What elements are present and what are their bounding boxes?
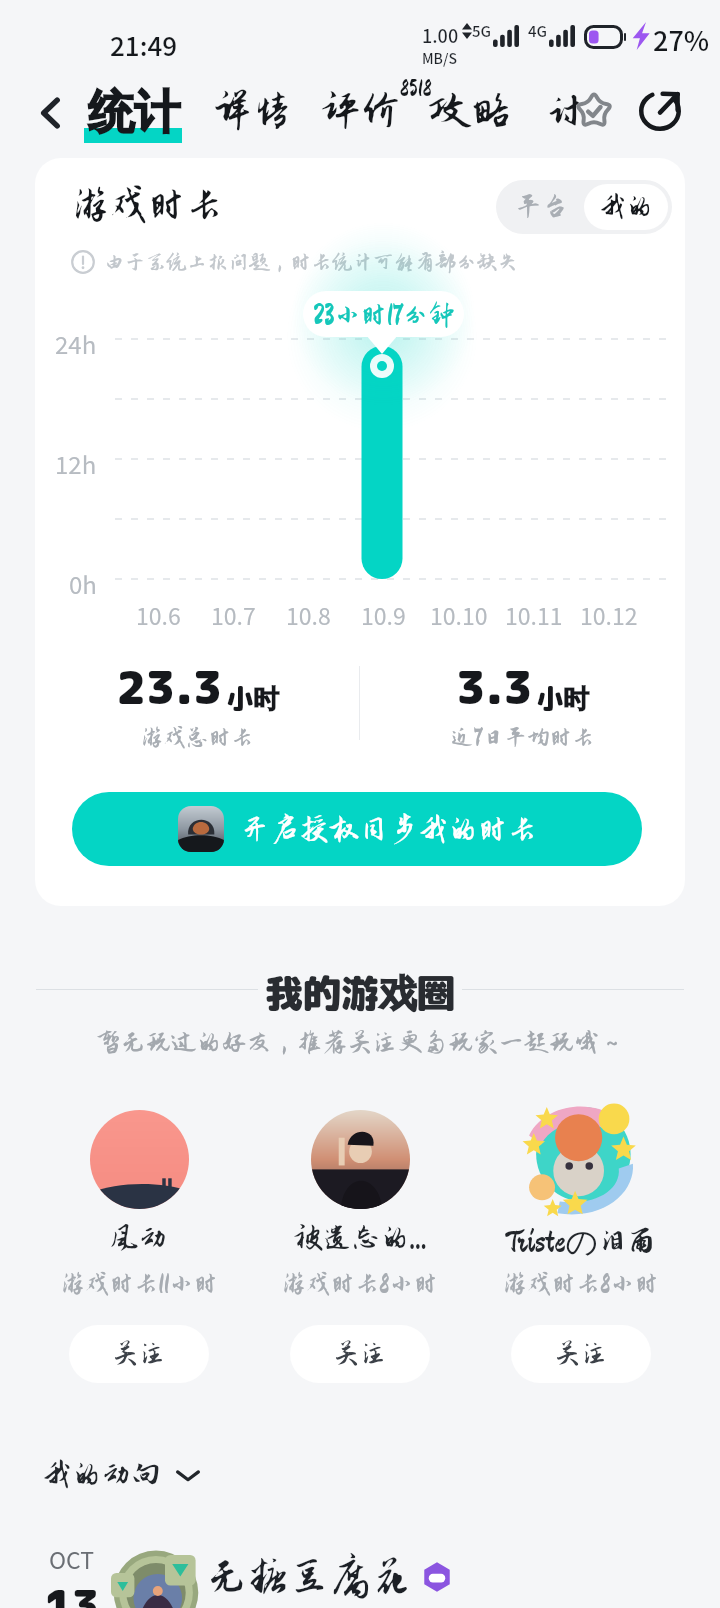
staticText: 暂无玩过的好友，推荐关注更多玩家一起玩哦～ <box>0 1028 720 1056</box>
button[interactable] <box>522 1100 640 1218</box>
staticText: 关注 <box>333 1339 387 1369</box>
staticText: 21:49 <box>110 26 178 64</box>
button[interactable]: 评价 <box>320 88 402 133</box>
button[interactable]: 我的动向 <box>42 1458 201 1491</box>
button[interactable]: 关注 <box>511 1325 651 1383</box>
staticText: 5G <box>472 20 492 42</box>
staticText: 关注 <box>112 1339 166 1369</box>
button[interactable]: Share <box>637 87 683 133</box>
staticText: 开启授权同步我的时长 <box>240 813 537 846</box>
button[interactable]: Favorite <box>570 87 618 135</box>
button[interactable]: 攻略 <box>430 88 512 133</box>
staticText: 游戏总时长 <box>141 725 254 750</box>
staticText: 游戏时长8小时 <box>503 1270 659 1297</box>
button[interactable]: 关注 <box>290 1325 430 1383</box>
button[interactable] <box>311 1110 410 1209</box>
staticText: 23.3 <box>116 656 223 719</box>
staticText: 10.8 <box>286 598 331 631</box>
button[interactable]: 详情 <box>212 88 294 133</box>
staticText: 我的游戏圈 <box>265 966 456 1019</box>
staticText: 小时 <box>227 680 280 716</box>
staticText: 游戏时长 <box>72 184 224 226</box>
button[interactable]: 我的 <box>584 184 668 230</box>
staticText: 关注 <box>554 1339 608 1369</box>
staticText: 统计 <box>88 84 180 142</box>
staticText: 10.10 <box>430 598 488 631</box>
button[interactable]: 关注 <box>69 1325 209 1383</box>
staticText: 10.11 <box>505 598 563 631</box>
button[interactable]: Back <box>28 90 74 136</box>
staticText: 10.9 <box>361 598 406 631</box>
staticText: 评价 <box>320 88 402 133</box>
staticText: 4G <box>528 20 548 42</box>
staticText: 27% <box>653 20 710 59</box>
staticText: 我的动向 <box>42 1458 161 1491</box>
staticText: 12h <box>55 446 97 481</box>
staticText: 10.12 <box>580 598 638 631</box>
button[interactable]: 开启授权同步我的时长 <box>72 792 642 866</box>
staticText: 我的 <box>599 192 653 222</box>
staticText: 1.00 <box>422 22 459 48</box>
staticText: 平台 <box>515 192 569 222</box>
staticText: 游戏时长8小时 <box>282 1270 438 1297</box>
staticText: 讨 <box>544 88 585 133</box>
staticText: 由于系统上报问题，时长统计可能有部分缺失 <box>104 251 519 274</box>
staticText: 小时 <box>537 680 590 716</box>
button[interactable] <box>90 1110 189 1209</box>
staticText: 3.3 <box>456 656 533 719</box>
staticText: 13 <box>44 1575 100 1608</box>
staticText: 无糖豆腐花 <box>206 1554 414 1600</box>
staticText: 风动 <box>110 1222 168 1254</box>
staticText: 10.7 <box>211 598 256 631</box>
staticText: 被遗忘的… <box>294 1222 427 1254</box>
staticText: Tristeの泪雨 <box>507 1222 656 1262</box>
staticText: 23小时17分钟 <box>313 300 455 329</box>
staticText: 24h <box>55 326 97 361</box>
staticText: MB/S <box>422 48 457 68</box>
staticText: 8518 <box>400 76 432 100</box>
staticText: 近7日平均时长 <box>451 725 595 750</box>
button[interactable]: 统计 <box>84 84 182 142</box>
button[interactable]: 平台 <box>500 184 584 230</box>
staticText: 10.6 <box>136 598 181 631</box>
staticText: 游戏时长11小时 <box>61 1270 218 1297</box>
staticText: OCT <box>49 1542 95 1575</box>
staticText: 0h <box>69 566 97 601</box>
